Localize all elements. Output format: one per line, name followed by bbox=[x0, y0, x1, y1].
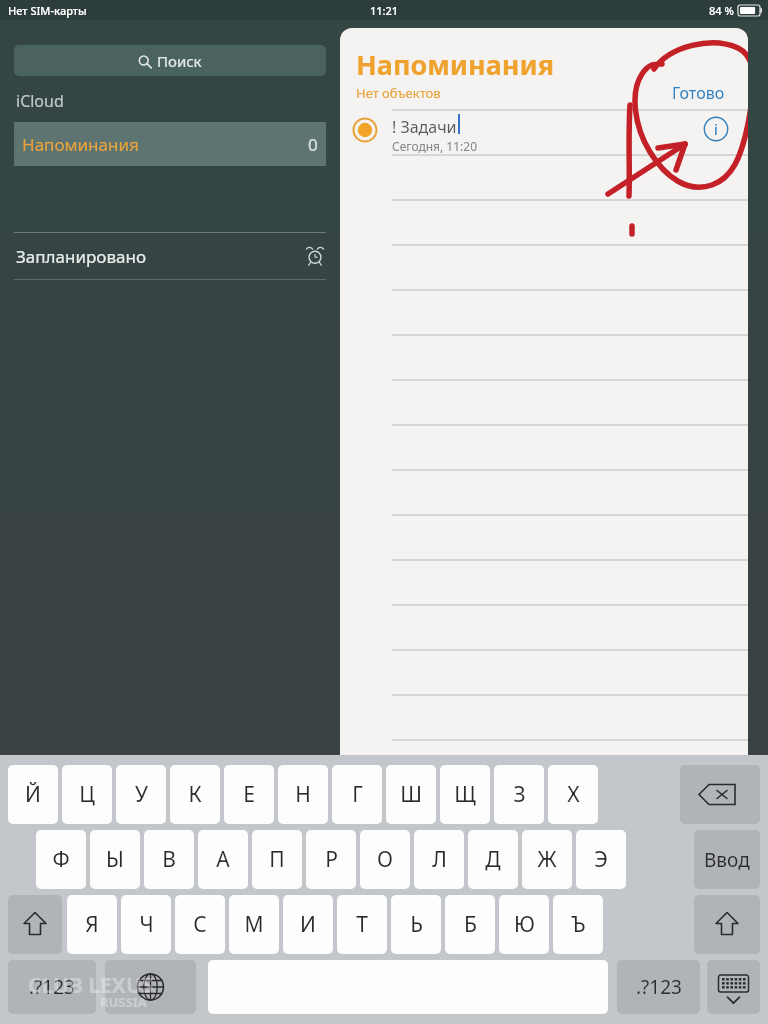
button[interactable]: В bbox=[144, 830, 194, 889]
button[interactable]: Л bbox=[414, 830, 464, 889]
button[interactable]: О bbox=[360, 830, 410, 889]
button[interactable]: Р bbox=[306, 830, 356, 889]
staticText: Поиск bbox=[157, 51, 202, 71]
staticText: Ю bbox=[514, 910, 535, 939]
staticText: Б bbox=[464, 910, 477, 939]
button[interactable]: Напоминания bbox=[14, 122, 326, 166]
button[interactable]: Я bbox=[67, 895, 117, 954]
staticText: .?123 bbox=[636, 974, 682, 1000]
button[interactable]: Ч bbox=[121, 895, 171, 954]
staticText: Л bbox=[432, 845, 447, 874]
staticText: Напоминания bbox=[356, 46, 555, 83]
button[interactable]: К bbox=[170, 765, 220, 824]
staticText: Нет объектов bbox=[356, 84, 441, 102]
button[interactable]: У bbox=[116, 765, 166, 824]
staticText: Д bbox=[485, 845, 501, 874]
button[interactable]: Ф bbox=[36, 830, 86, 889]
staticText: Нет SIM-карты bbox=[8, 3, 87, 18]
button[interactable]: М bbox=[229, 895, 279, 954]
staticText: Ы bbox=[106, 845, 124, 874]
staticText: К bbox=[188, 780, 202, 809]
button[interactable]: Готово bbox=[668, 80, 729, 106]
button[interactable]: Й bbox=[8, 765, 58, 824]
staticText: Ь bbox=[410, 910, 423, 939]
staticText: З bbox=[513, 780, 526, 809]
button[interactable]: Ц bbox=[62, 765, 112, 824]
staticText: Готово bbox=[672, 82, 725, 104]
staticText: Й bbox=[25, 780, 41, 809]
button[interactable]: Т bbox=[337, 895, 387, 954]
button[interactable]: Ш bbox=[386, 765, 436, 824]
staticText: Р bbox=[325, 845, 338, 874]
button[interactable]: Ъ bbox=[553, 895, 603, 954]
staticText: Ш bbox=[400, 780, 422, 809]
staticText: ! Задачи bbox=[392, 116, 457, 138]
button[interactable]: Е bbox=[224, 765, 274, 824]
button[interactable]: Numbers bbox=[617, 960, 700, 1014]
button[interactable]: Ь bbox=[391, 895, 441, 954]
staticText: А bbox=[216, 845, 230, 874]
staticText: О bbox=[377, 845, 393, 874]
button[interactable]: Details bbox=[703, 116, 729, 142]
button[interactable]: Shift bbox=[8, 895, 62, 954]
button[interactable]: Hide keyboard bbox=[707, 960, 760, 1014]
staticText: Сегодня, 11:20 bbox=[392, 138, 478, 154]
staticText: С bbox=[193, 910, 207, 939]
button[interactable]: Language bbox=[105, 960, 196, 1014]
staticText: Ввод bbox=[704, 847, 750, 873]
staticText: М bbox=[244, 910, 264, 939]
staticText: Ъ bbox=[571, 910, 586, 939]
staticText: 84 % bbox=[709, 3, 734, 18]
staticText: i bbox=[714, 120, 718, 139]
button[interactable]: Numbers bbox=[8, 960, 96, 1014]
staticText: Т bbox=[356, 910, 368, 939]
staticText: Н bbox=[295, 780, 311, 809]
staticText: В bbox=[162, 845, 176, 874]
staticText: Я bbox=[85, 910, 99, 939]
button[interactable]: Запланировано bbox=[14, 233, 326, 279]
staticText: Ч bbox=[139, 910, 154, 939]
button[interactable]: Ю bbox=[499, 895, 549, 954]
staticText: .?123 bbox=[29, 974, 75, 1000]
button[interactable]: И bbox=[283, 895, 333, 954]
staticText: П bbox=[269, 845, 285, 874]
staticText: Е bbox=[243, 780, 255, 809]
button[interactable]: Backspace bbox=[680, 765, 760, 824]
staticText: Щ bbox=[454, 780, 476, 809]
staticText: Х bbox=[567, 780, 580, 809]
button[interactable]: З bbox=[494, 765, 544, 824]
button[interactable]: Х bbox=[548, 765, 598, 824]
other: Scheduled bbox=[306, 247, 324, 265]
staticText: Ц bbox=[79, 780, 95, 809]
button[interactable]: Ж bbox=[522, 830, 572, 889]
button[interactable]: Enter bbox=[694, 830, 760, 889]
staticText: Ф bbox=[52, 845, 70, 874]
button[interactable]: Д bbox=[468, 830, 518, 889]
button[interactable]: Н bbox=[278, 765, 328, 824]
button[interactable]: П bbox=[252, 830, 302, 889]
staticText: Ж bbox=[537, 845, 557, 874]
staticText: Э bbox=[594, 845, 608, 874]
button[interactable]: Э bbox=[576, 830, 626, 889]
button[interactable]: С bbox=[175, 895, 225, 954]
button[interactable]: Toggle reminder bbox=[353, 118, 377, 142]
staticText: Напоминания bbox=[22, 133, 139, 156]
button[interactable]: Б bbox=[445, 895, 495, 954]
button[interactable]: Щ bbox=[440, 765, 490, 824]
staticText: iCloud bbox=[16, 90, 64, 112]
staticText: 0 bbox=[308, 133, 318, 156]
staticText: RUSSIA bbox=[100, 993, 147, 1011]
button[interactable]: А bbox=[198, 830, 248, 889]
button[interactable]: Ы bbox=[90, 830, 140, 889]
staticText: Запланировано bbox=[16, 245, 146, 268]
staticText: Г bbox=[352, 780, 363, 809]
button[interactable]: Shift bbox=[694, 895, 760, 954]
staticText: 11:21 bbox=[370, 3, 399, 18]
staticText: И bbox=[300, 910, 316, 939]
button[interactable]: Поиск bbox=[14, 45, 326, 76]
staticText: CLUB LEXUS bbox=[28, 971, 154, 1000]
staticText: У bbox=[135, 780, 148, 809]
button[interactable]: Г bbox=[332, 765, 382, 824]
